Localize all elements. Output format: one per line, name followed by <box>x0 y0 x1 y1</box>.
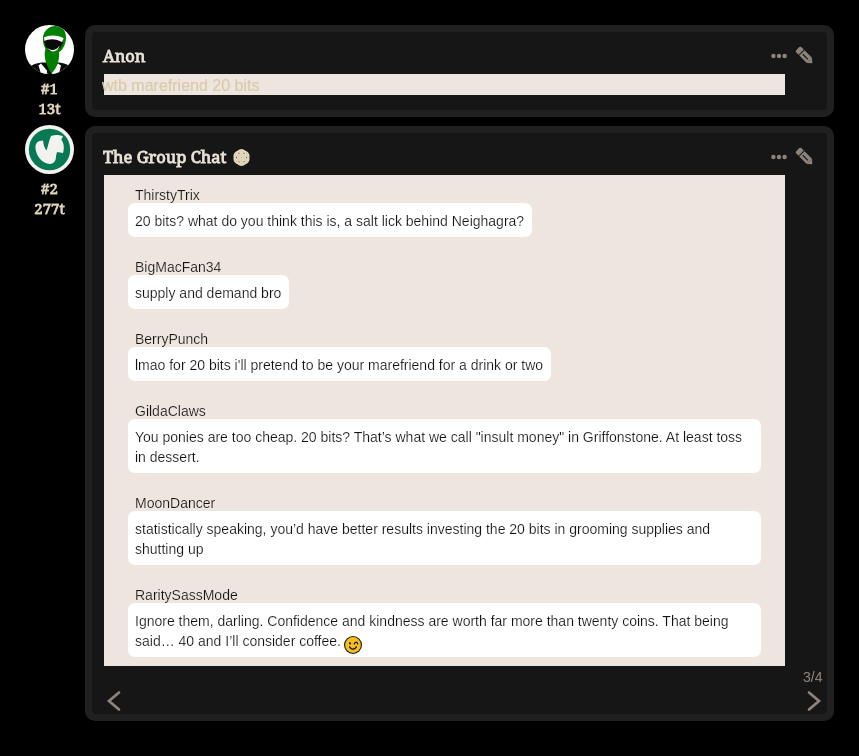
button[interactable]: Anon avatar <box>25 25 74 74</box>
staticText: #2 <box>41 178 58 198</box>
button[interactable]: Next <box>802 688 826 714</box>
staticText: Ignore them, darling. Confidence and kin… <box>135 610 754 650</box>
button[interactable]: More options <box>767 46 791 66</box>
staticText: The Group Chat <box>103 145 227 167</box>
staticText: wtb marefriend 20 bits <box>102 74 260 95</box>
staticText: MoonDancer <box>135 494 216 511</box>
button[interactable]: Ignore them, darling. Confidence and kin… <box>128 603 761 657</box>
staticText: 277t <box>34 198 65 218</box>
staticText: statistically speaking, you’d have bette… <box>135 518 754 558</box>
staticText: GildaClaws <box>135 402 206 419</box>
button[interactable]: You ponies are too cheap. 20 bits? That’… <box>128 419 761 473</box>
staticText: supply and demand bro <box>135 282 282 302</box>
button[interactable]: supply and demand bro <box>128 275 289 309</box>
staticText: BerryPunch <box>135 330 209 347</box>
staticText: You ponies are too cheap. 20 bits? That’… <box>135 426 754 466</box>
staticText: Anon <box>103 44 146 66</box>
staticText: 13t <box>38 98 61 118</box>
button[interactable]: Edit <box>794 146 816 168</box>
staticText: #1 <box>41 78 58 98</box>
button[interactable]: statistically speaking, you’d have bette… <box>128 511 761 565</box>
staticText: RaritySassMode <box>135 586 238 603</box>
staticText: 3/4 <box>803 669 823 685</box>
button[interactable]: Edit <box>794 45 816 67</box>
button[interactable]: Group avatar <box>25 125 74 174</box>
staticText: ThirstyTrix <box>135 186 200 203</box>
staticText: 20 bits? what do you think this is, a sa… <box>135 210 525 230</box>
staticText: lmao for 20 bits i'll pretend to be your… <box>135 354 544 374</box>
button[interactable]: More options <box>767 147 791 167</box>
button[interactable]: lmao for 20 bits i'll pretend to be your… <box>128 347 551 381</box>
staticText: BigMacFan34 <box>135 258 222 275</box>
button[interactable]: 20 bits? what do you think this is, a sa… <box>128 203 532 237</box>
button[interactable]: Previous <box>102 688 126 714</box>
